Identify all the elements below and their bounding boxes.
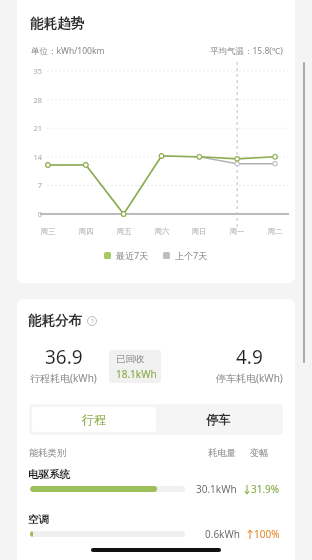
staticText: 周六 [147, 227, 177, 236]
staticText: 18.1kWh [116, 367, 157, 381]
staticText: 100% [254, 527, 280, 541]
staticText: 已回收 [116, 353, 145, 365]
button[interactable]: 停车 [156, 407, 280, 432]
staticText: 行程耗电(kWh) [30, 371, 97, 385]
staticText: 空调 [28, 513, 49, 526]
staticText: 能耗类别 [29, 447, 67, 459]
staticText: 单位：kWh/100km [31, 45, 105, 57]
staticText: 35 [17, 66, 42, 76]
staticText: 停车 [206, 412, 230, 427]
button[interactable]: 帮助 [87, 316, 97, 326]
staticText: 电驱系统 [28, 468, 70, 481]
staticText: 周日 [184, 227, 214, 236]
button[interactable]: 行程 [32, 407, 156, 432]
staticText: 能耗分布 [28, 312, 82, 329]
staticText: 平均气温：15.8(℃) [210, 45, 283, 57]
staticText: 28 [17, 95, 42, 105]
staticText: 变幅 [250, 447, 269, 459]
staticText: 31.9% [251, 482, 280, 496]
staticText: 周五 [109, 227, 139, 236]
staticText: 耗电量 [208, 447, 236, 459]
staticText: 上个7天 [175, 249, 208, 261]
staticText: 30.1kWh [196, 482, 237, 496]
staticText: 停车耗电(kWh) [216, 371, 283, 385]
staticText: 行程 [82, 412, 106, 427]
staticText: 周二 [260, 227, 290, 236]
staticText: 14 [17, 152, 42, 162]
staticText: ? [91, 317, 94, 325]
staticText: 能耗趋势 [30, 15, 84, 32]
staticText: 周四 [71, 227, 101, 236]
staticText: 7 [17, 180, 42, 190]
staticText: 周三 [33, 227, 63, 236]
staticText: 21 [17, 123, 42, 133]
staticText: 0.6kWh [205, 527, 240, 541]
staticText: 周一 [222, 227, 252, 236]
staticText: 最近7天 [116, 249, 149, 261]
staticText: 0 [17, 209, 42, 219]
staticText: 36.9 [45, 344, 83, 370]
staticText: 4.9 [236, 344, 263, 370]
